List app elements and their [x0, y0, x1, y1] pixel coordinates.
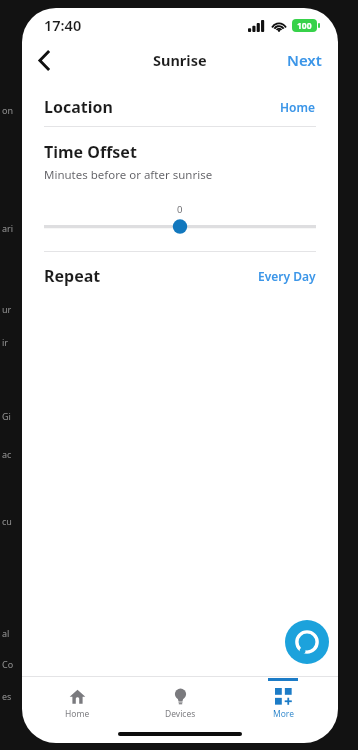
staticText: 100 — [297, 20, 312, 32]
staticText: Minutes before or after sunrise — [44, 167, 213, 183]
staticText: cu — [2, 515, 12, 527]
staticText: on — [2, 104, 14, 116]
staticText: Home — [65, 708, 90, 720]
staticText: ari — [2, 222, 14, 234]
staticText: Time Offset — [44, 141, 137, 163]
button[interactable]: More — [235, 677, 331, 721]
staticText: es — [2, 690, 12, 702]
staticText: al — [2, 627, 10, 639]
staticText: Location — [44, 96, 113, 118]
staticText: ir — [2, 336, 9, 348]
button[interactable]: Home — [29, 677, 125, 721]
staticText: Devices — [165, 708, 196, 720]
staticText: 17:40 — [44, 15, 82, 35]
staticText: Gi — [2, 410, 11, 422]
button[interactable]: Alexa — [284, 619, 330, 665]
staticText: Next — [287, 50, 322, 70]
staticText: ur — [2, 303, 12, 315]
button[interactable]: Back — [22, 42, 66, 78]
staticText: Repeat — [44, 265, 101, 287]
button[interactable]: Repeat — [22, 252, 338, 300]
staticText: More — [273, 708, 294, 720]
staticText: Home — [280, 99, 316, 115]
button[interactable]: Devices — [132, 677, 228, 721]
staticText: ac — [2, 448, 12, 460]
staticText: Sunrise — [153, 50, 207, 70]
button[interactable]: Location — [22, 88, 338, 126]
button[interactable]: Next — [287, 50, 322, 70]
staticText: Co — [2, 658, 14, 670]
staticText: Every Day — [258, 268, 316, 284]
button[interactable]: 0 — [22, 203, 338, 237]
staticText: 0 — [177, 203, 183, 216]
